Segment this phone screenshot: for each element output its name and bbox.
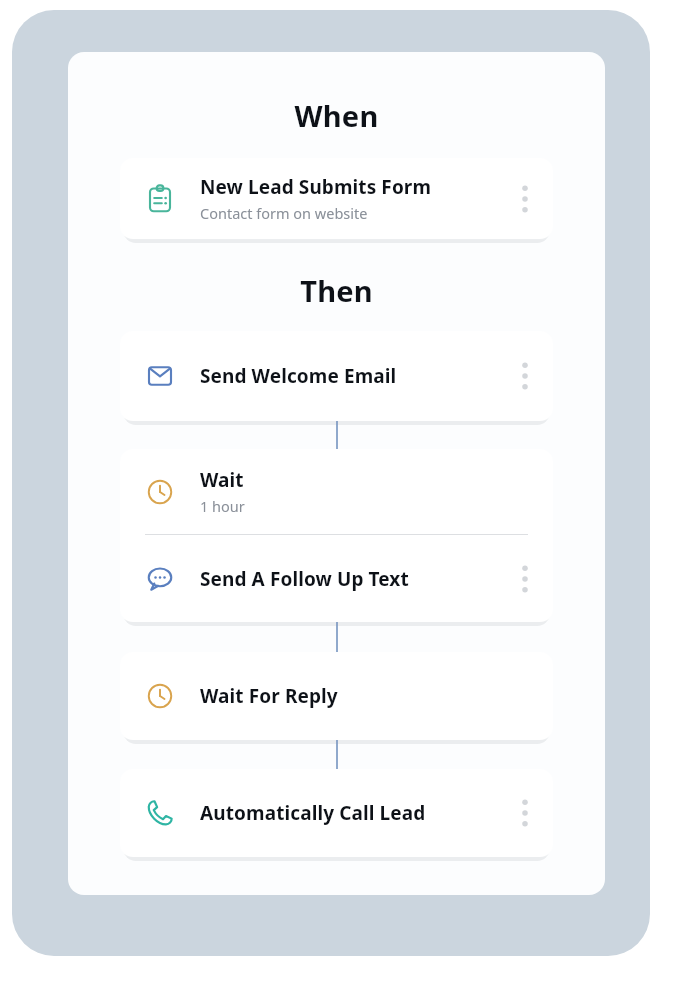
button[interactable]: Send Welcome Email	[120, 331, 553, 421]
staticText: Wait	[200, 467, 244, 493]
staticText: Automatically Call Lead	[200, 800, 426, 826]
staticText: Contact form on website	[200, 203, 368, 223]
button[interactable]: More options for Automatically Call Lead	[511, 791, 539, 835]
button[interactable]: Wait For Reply	[120, 652, 553, 740]
staticText: 1 hour	[200, 496, 245, 516]
staticText: When	[120, 96, 553, 135]
staticText: Send A Follow Up Text	[200, 566, 409, 592]
button[interactable]: Wait	[120, 449, 553, 534]
button[interactable]: Send A Follow Up Text	[120, 535, 553, 622]
staticText: Send Welcome Email	[200, 363, 397, 389]
button[interactable]: More options for New Lead Submits Form	[511, 177, 539, 221]
staticText: Then	[120, 271, 553, 310]
button[interactable]: Automatically Call Lead	[120, 769, 553, 857]
staticText: New Lead Submits Form	[200, 174, 432, 200]
button[interactable]: New Lead Submits Form	[120, 158, 553, 239]
button[interactable]: More options for Send A Follow Up Text	[511, 557, 539, 601]
button[interactable]: More options for Send Welcome Email	[511, 354, 539, 398]
staticText: Wait For Reply	[200, 683, 338, 709]
